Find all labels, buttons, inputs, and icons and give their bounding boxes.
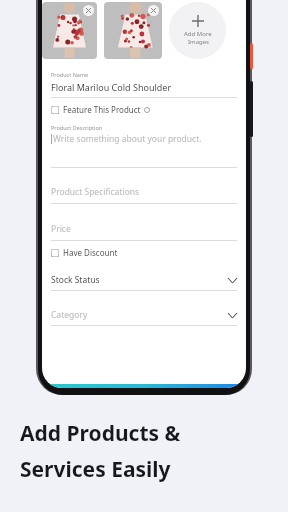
button[interactable]: Remove image <box>83 5 94 16</box>
staticText: Write something about your product. <box>53 133 202 145</box>
staticText: Product Description <box>51 124 103 131</box>
staticText: Have Discount <box>63 247 118 258</box>
staticText: Services Easily <box>20 455 171 484</box>
button[interactable]: Feature This Product <box>51 104 237 115</box>
staticText: Product Name <box>51 71 89 78</box>
staticText: Product Specifications <box>51 186 140 198</box>
staticText: Stock Status <box>51 274 100 286</box>
staticText: Floral Marilou Cold Shoulder <box>51 81 172 93</box>
button[interactable]: Remove image <box>148 5 159 16</box>
button[interactable]: Remove image <box>104 2 162 59</box>
staticText: Images <box>188 38 209 46</box>
button[interactable]: Remove image <box>42 2 97 59</box>
button[interactable]: Have Discount <box>51 247 237 258</box>
button[interactable]: Stock Status <box>51 274 237 286</box>
staticText: Category <box>51 309 88 321</box>
staticText: Add More <box>184 30 212 38</box>
staticText: Add Products & <box>20 419 181 448</box>
staticText: Feature This Product <box>63 104 141 115</box>
button[interactable]: Category <box>51 309 237 321</box>
button[interactable]: Add More <box>169 2 226 59</box>
staticText: Price <box>51 223 71 235</box>
